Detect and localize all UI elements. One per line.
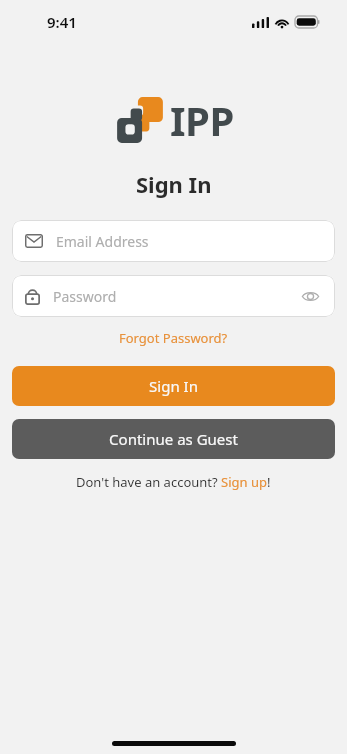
button[interactable]: Continue as Guest [12, 419, 335, 459]
button[interactable]: Password [12, 275, 335, 317]
button[interactable]: Show password [298, 284, 322, 308]
staticText: Continue as Guest [109, 429, 238, 449]
button[interactable]: Don't have an account? Sign up! [72, 471, 275, 493]
staticText: Password [53, 287, 117, 306]
staticText: Sign In [136, 169, 212, 199]
staticText: Forgot Password? [119, 329, 228, 347]
staticText: IPP [170, 93, 234, 147]
button[interactable]: Forgot Password? [113, 326, 234, 350]
staticText: Sign In [149, 376, 198, 396]
staticText: 9:41 [47, 12, 77, 32]
staticText: Don't have an account? Sign up! [76, 473, 271, 491]
button[interactable]: Email Address [12, 220, 335, 262]
button[interactable]: Sign In [12, 366, 335, 406]
staticText: Email Address [56, 232, 149, 251]
